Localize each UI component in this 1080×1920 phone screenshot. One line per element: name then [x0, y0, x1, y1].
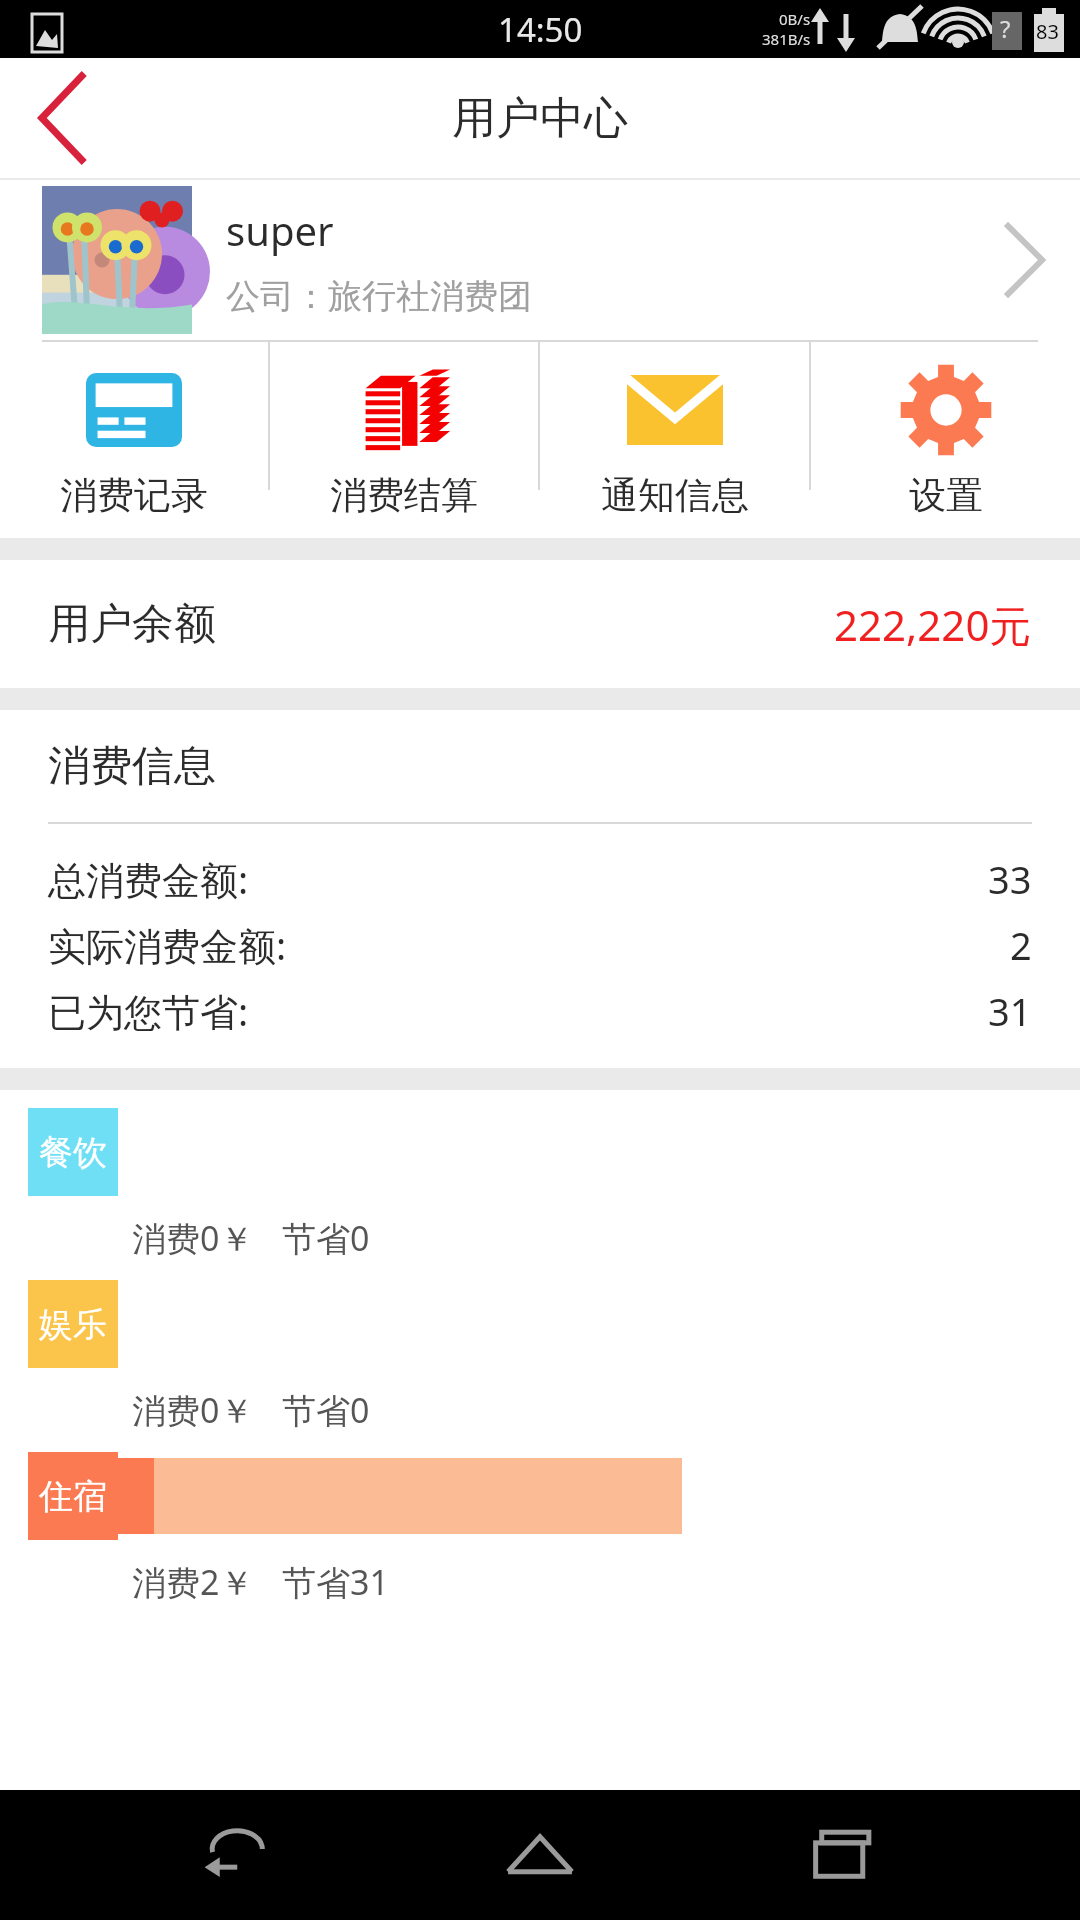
staticText: 餐饮	[39, 1131, 107, 1174]
button[interactable]: Back	[173, 1790, 303, 1920]
button[interactable]: 设置	[811, 342, 1080, 538]
staticText: 节省0	[282, 1215, 370, 1261]
staticText: 总消费金额:	[48, 853, 249, 905]
staticText: 2	[1010, 919, 1032, 971]
staticText: 31	[988, 985, 1032, 1037]
staticText: 节省31	[282, 1559, 389, 1605]
staticText: 公司：旅行社消费团	[226, 275, 532, 318]
staticText: 83	[1036, 18, 1059, 45]
button[interactable]: super	[0, 180, 1080, 340]
staticText: 14:50	[498, 7, 583, 52]
staticText: 用户中心	[452, 91, 628, 146]
staticText: 222,220元	[834, 596, 1032, 653]
staticText: 0B/s	[779, 9, 811, 29]
staticText: 节省0	[282, 1387, 370, 1433]
button[interactable]: 消费记录	[0, 342, 268, 538]
staticText: 消费记录	[60, 472, 208, 519]
staticText: 消费信息	[48, 740, 216, 793]
staticText: 实际消费金额:	[48, 919, 287, 971]
staticText: 设置	[909, 472, 983, 519]
staticText: 已为您节省:	[48, 985, 249, 1037]
staticText: ?	[1000, 12, 1011, 45]
staticText: 消费2￥	[132, 1559, 254, 1605]
staticText: 用户余额	[48, 598, 216, 651]
staticText: super	[226, 203, 334, 257]
button[interactable]: Back	[0, 58, 130, 178]
staticText: 通知信息	[601, 472, 749, 519]
staticText: 消费0￥	[132, 1387, 254, 1433]
button[interactable]: 用户余额	[0, 560, 1080, 688]
button[interactable]: Home	[475, 1790, 605, 1920]
staticText: 消费结算	[330, 472, 478, 519]
staticText: 消费0￥	[132, 1215, 254, 1261]
button[interactable]: Recent apps	[778, 1790, 908, 1920]
button[interactable]: 通知信息	[540, 342, 809, 538]
staticText: 33	[988, 853, 1032, 905]
button[interactable]: 消费结算	[270, 342, 538, 538]
staticText: 娱乐	[39, 1303, 107, 1346]
staticText: 住宿	[39, 1475, 107, 1518]
staticText: 381B/s	[762, 29, 811, 49]
